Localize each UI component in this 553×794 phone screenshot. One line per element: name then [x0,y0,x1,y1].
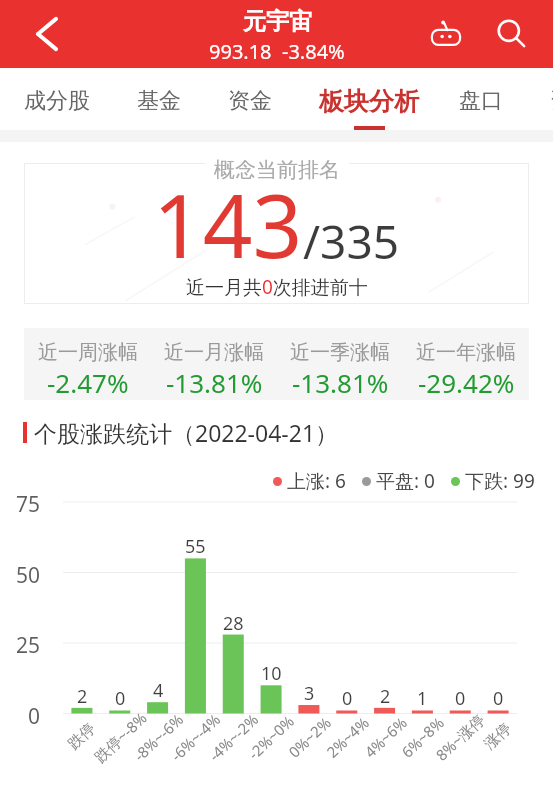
staticText: 近一月共0次排进前十 [186,274,368,300]
button[interactable]: 板块分析 [319,68,419,130]
staticText: 盘口 [459,87,503,115]
staticText: 3 [304,681,315,706]
staticText: 近一周涨幅 [38,340,138,365]
staticText: -2.47% [47,365,129,400]
staticText: 0 [493,686,504,711]
button[interactable]: Search [489,11,535,57]
staticText: -8%~-6% [129,709,188,765]
staticText: 平盘: 0 [376,468,435,494]
staticText: 下跌: 99 [465,468,535,494]
staticText: 板块分析 [319,86,419,117]
button[interactable]: 资金 [228,68,272,130]
staticText: -6%~-4% [166,709,225,765]
staticText: 个股涨跌统计（2022-04-21） [34,417,339,448]
button[interactable]: 基金 [137,68,181,130]
staticText: 0%~2% [284,712,335,762]
staticText: 跌停~-8% [90,707,151,766]
staticText: 0 [342,686,353,711]
staticText: -4%~-2% [204,709,263,765]
button[interactable]: 资 [550,68,553,130]
staticText: 0 [115,686,126,711]
staticText: 2 [380,684,391,709]
staticText: 143 [153,165,303,283]
staticText: 28 [223,611,244,636]
staticText: 8%~涨停 [431,709,489,765]
button[interactable]: 盘口 [459,68,503,130]
staticText: 上涨: 6 [287,468,346,494]
staticText: /335 [303,210,400,273]
staticText: 2%~4% [322,712,373,762]
staticText: 993.18 -3.84% [209,38,345,65]
button[interactable]: AI assistant [423,11,469,57]
staticText: 4 [153,678,164,703]
button[interactable]: 成分股 [24,68,90,130]
staticText: 6%~8% [397,712,448,762]
staticText: -13.81% [292,365,389,400]
staticText: 0 [455,686,466,711]
staticText: 成分股 [24,87,90,115]
staticText: 近一月涨幅 [164,340,264,365]
staticText: 0 [28,702,41,731]
staticText: 近一季涨幅 [290,340,390,365]
staticText: 25 [16,631,41,660]
staticText: 基金 [137,87,181,115]
staticText: 75 [16,490,41,519]
staticText: -13.81% [166,365,263,400]
staticText: 概念当前排名 [214,157,340,183]
button[interactable]: Back [24,11,70,57]
staticText: 1 [417,686,428,711]
staticText: 资金 [228,87,272,115]
staticText: 跌停 [65,719,99,754]
staticText: 近一年涨幅 [416,340,516,365]
staticText: 50 [16,561,41,590]
staticText: -29.42% [418,365,515,400]
staticText: 55 [185,534,206,559]
staticText: 资 [550,87,553,115]
staticText: 元宇宙 [243,7,312,36]
staticText: -2%~0% [244,711,298,763]
staticText: 涨停 [481,719,515,754]
staticText: 2 [77,684,88,709]
staticText: 4%~6% [360,712,411,762]
staticText: 10 [261,661,282,686]
